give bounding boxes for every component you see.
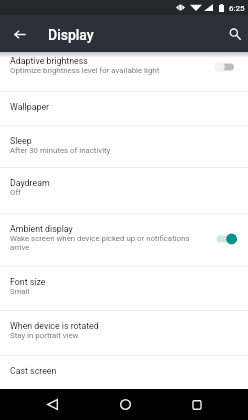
button[interactable]: Font size	[0, 267, 248, 311]
button[interactable]: Recent apps	[179, 389, 215, 420]
staticText: Optimize brightness level for available …	[10, 66, 160, 75]
button[interactable]: Toggle on	[212, 230, 238, 248]
button[interactable]: Wallpaper	[0, 92, 248, 126]
button[interactable]: Cast screen	[0, 356, 248, 389]
button[interactable]: Toggle off	[212, 58, 238, 76]
button[interactable]: Search	[223, 22, 247, 46]
button[interactable]: Back	[34, 389, 70, 420]
staticText: Sleep	[10, 136, 32, 146]
button[interactable]: Back	[7, 22, 31, 46]
button[interactable]: When device is rotated	[0, 311, 248, 356]
staticText: Small	[10, 287, 30, 296]
staticText: Cast screen	[10, 366, 57, 376]
button[interactable]: Adaptive brightness	[0, 52, 248, 92]
staticText: After 30 minutes of inactivity	[10, 146, 111, 155]
staticText: Daydream	[10, 178, 50, 188]
staticText: Off	[10, 188, 21, 197]
button[interactable]: Daydream	[0, 168, 248, 214]
staticText: Wake screen when device picked up or not…	[10, 234, 202, 252]
staticText: Font size	[10, 277, 46, 287]
staticText: 6:25	[229, 4, 245, 13]
button[interactable]: Home	[107, 389, 143, 420]
staticText: Display	[48, 27, 94, 43]
button[interactable]: Ambient display	[0, 214, 248, 267]
staticText: Stay in portrait view	[10, 331, 79, 340]
staticText: When device is rotated	[10, 321, 99, 331]
staticText: Wallpaper	[10, 102, 50, 112]
staticText: Ambient display	[10, 224, 73, 234]
button[interactable]: Sleep	[0, 126, 248, 168]
staticText: Adaptive brightness	[10, 56, 88, 66]
